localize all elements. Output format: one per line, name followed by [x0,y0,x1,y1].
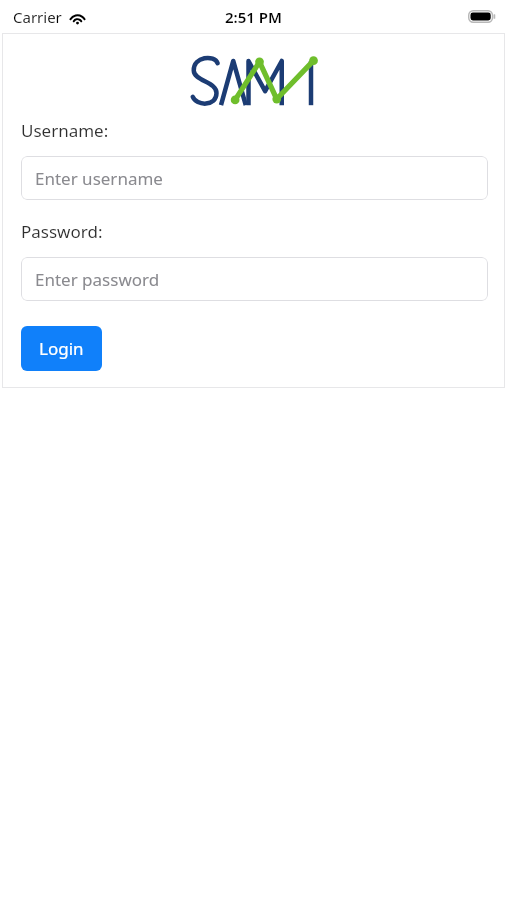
staticText: Username: [21,119,109,142]
other: SAM logo [192,52,317,108]
button[interactable]: Login [21,326,102,371]
staticText: 2:51 PM [225,7,282,27]
other: Wi-Fi [69,11,86,24]
staticText: Login [39,337,84,360]
staticText: Carrier [13,7,62,27]
staticText: Enter username [35,167,163,190]
staticText: Enter password [35,268,160,291]
button[interactable]: Enter password [21,257,488,301]
staticText: Password: [21,220,103,243]
button[interactable]: Enter username [21,156,488,200]
other: Battery [468,10,496,23]
